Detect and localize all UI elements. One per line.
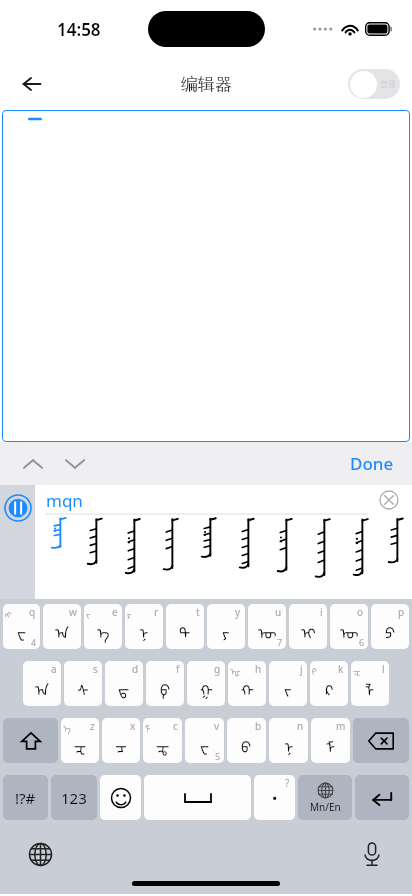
button[interactable]: !?# xyxy=(3,775,48,820)
button[interactable]: Switch Mongolian English xyxy=(298,775,352,820)
button[interactable]: f xyxy=(146,661,184,706)
staticText: 4 xyxy=(31,636,37,648)
staticText: ᠥ xyxy=(340,617,359,643)
button[interactable]: y xyxy=(207,604,245,649)
button[interactable]: v xyxy=(185,718,224,763)
button[interactable]: Candidate 3 xyxy=(115,517,153,597)
button[interactable]: Candidate 9 xyxy=(343,517,381,597)
button[interactable]: Voice input xyxy=(352,834,392,874)
button[interactable]: x xyxy=(102,718,140,763)
staticText: a xyxy=(51,662,57,676)
button[interactable]: Clear input xyxy=(374,485,404,515)
staticText: ᠦ xyxy=(258,617,277,643)
button[interactable]: w xyxy=(43,604,81,649)
button[interactable]: b xyxy=(227,718,266,763)
button[interactable]: ᠷ xyxy=(125,604,163,649)
staticText: ᠽ xyxy=(353,662,361,678)
button[interactable]: Space xyxy=(144,775,251,820)
staticText: y xyxy=(235,605,241,619)
button[interactable]: ᠩ xyxy=(3,604,40,649)
staticText: ᠡ xyxy=(97,617,110,643)
staticText: ᠡ xyxy=(63,719,71,735)
staticText: d xyxy=(132,662,139,676)
staticText: ᠭ xyxy=(200,674,213,700)
staticText: g xyxy=(214,662,221,676)
staticText: ᠪ xyxy=(241,731,252,757)
staticText: ᠾ xyxy=(230,662,241,678)
button[interactable]: Candidate 2 xyxy=(77,517,115,597)
button[interactable]: 123 xyxy=(51,775,97,820)
staticText: q xyxy=(29,605,36,619)
staticText: ᠳ xyxy=(118,674,130,700)
button[interactable]: ᠻ xyxy=(310,661,348,706)
staticText: ᠰ xyxy=(77,674,89,700)
button[interactable]: t xyxy=(166,604,204,649)
button[interactable]: Next field xyxy=(56,445,94,483)
button[interactable]: Change keyboard xyxy=(20,834,60,874)
staticText: ᠠ xyxy=(55,617,69,643)
button[interactable]: Emoji xyxy=(100,775,141,820)
button[interactable]: s xyxy=(64,661,102,706)
button[interactable]: ᠽ xyxy=(351,661,389,706)
staticText: k xyxy=(338,662,344,676)
button[interactable]: Candidate 5 xyxy=(191,517,229,597)
button[interactable] xyxy=(2,110,410,442)
button[interactable]: Candidate 7 xyxy=(267,517,305,597)
staticText: j xyxy=(300,662,303,676)
staticText: ᠮ xyxy=(145,719,151,735)
button[interactable]: Backspace xyxy=(353,718,409,763)
staticText: b xyxy=(255,719,262,733)
staticText: ᠯ xyxy=(365,674,375,700)
staticText: 7 xyxy=(277,636,283,648)
button[interactable]: m xyxy=(311,718,350,763)
button[interactable]: u xyxy=(248,604,286,649)
button[interactable]: ᠾ xyxy=(228,661,266,706)
staticText: o xyxy=(357,605,364,619)
button[interactable]: d xyxy=(105,661,143,706)
button[interactable]: ᠮ xyxy=(143,718,182,763)
staticText: ? xyxy=(285,776,290,790)
staticText: ᠴ xyxy=(115,731,127,757)
button[interactable]: i xyxy=(289,604,327,649)
staticText: ᠶ xyxy=(222,617,230,643)
staticText: 6 xyxy=(359,636,365,648)
staticText: ᠠ xyxy=(35,674,49,700)
staticText: l xyxy=(382,662,385,676)
staticText: ᠵ xyxy=(86,605,91,621)
button[interactable]: n xyxy=(269,718,308,763)
staticText: ᠢ xyxy=(301,617,316,643)
staticText: 14:58 xyxy=(57,18,101,41)
staticText: e xyxy=(112,605,118,619)
button[interactable]: ? xyxy=(254,775,295,820)
button[interactable]: Candidate 6 xyxy=(229,517,267,597)
staticText: ᠻ xyxy=(312,662,317,678)
button[interactable]: Back xyxy=(10,62,54,106)
staticText: 编辑器 xyxy=(181,74,232,95)
button[interactable]: Candidate 1 xyxy=(43,517,77,597)
button[interactable]: Input method logo xyxy=(0,485,35,599)
staticText: r xyxy=(154,605,159,619)
button[interactable]: Candidate 8 xyxy=(305,517,343,597)
button[interactable]: g xyxy=(187,661,225,706)
staticText: ᠵ xyxy=(284,674,292,700)
staticText: ᠸ xyxy=(17,617,26,643)
staticText: z xyxy=(90,719,95,733)
button[interactable]: o xyxy=(330,604,368,649)
button[interactable]: Enter xyxy=(355,775,409,820)
staticText: ᠽ xyxy=(74,731,87,757)
button[interactable]: Candidate 4 xyxy=(153,517,191,597)
button[interactable]: j xyxy=(269,661,307,706)
staticText: ᠬ xyxy=(241,674,254,700)
button[interactable]: Candidate 10 xyxy=(381,517,412,597)
button[interactable]: p xyxy=(371,604,409,649)
staticText: v xyxy=(214,719,220,733)
button[interactable]: Shift xyxy=(3,718,58,763)
button[interactable]: Mode toggle xyxy=(348,69,400,99)
button[interactable]: Previous field xyxy=(14,445,52,483)
button[interactable]: ᠡ xyxy=(61,718,99,763)
button[interactable]: a xyxy=(23,661,61,706)
button[interactable]: ᠵ xyxy=(84,604,122,649)
staticText: ᠫ xyxy=(385,617,396,643)
button[interactable]: Done xyxy=(342,446,402,481)
staticText: i xyxy=(320,605,323,619)
